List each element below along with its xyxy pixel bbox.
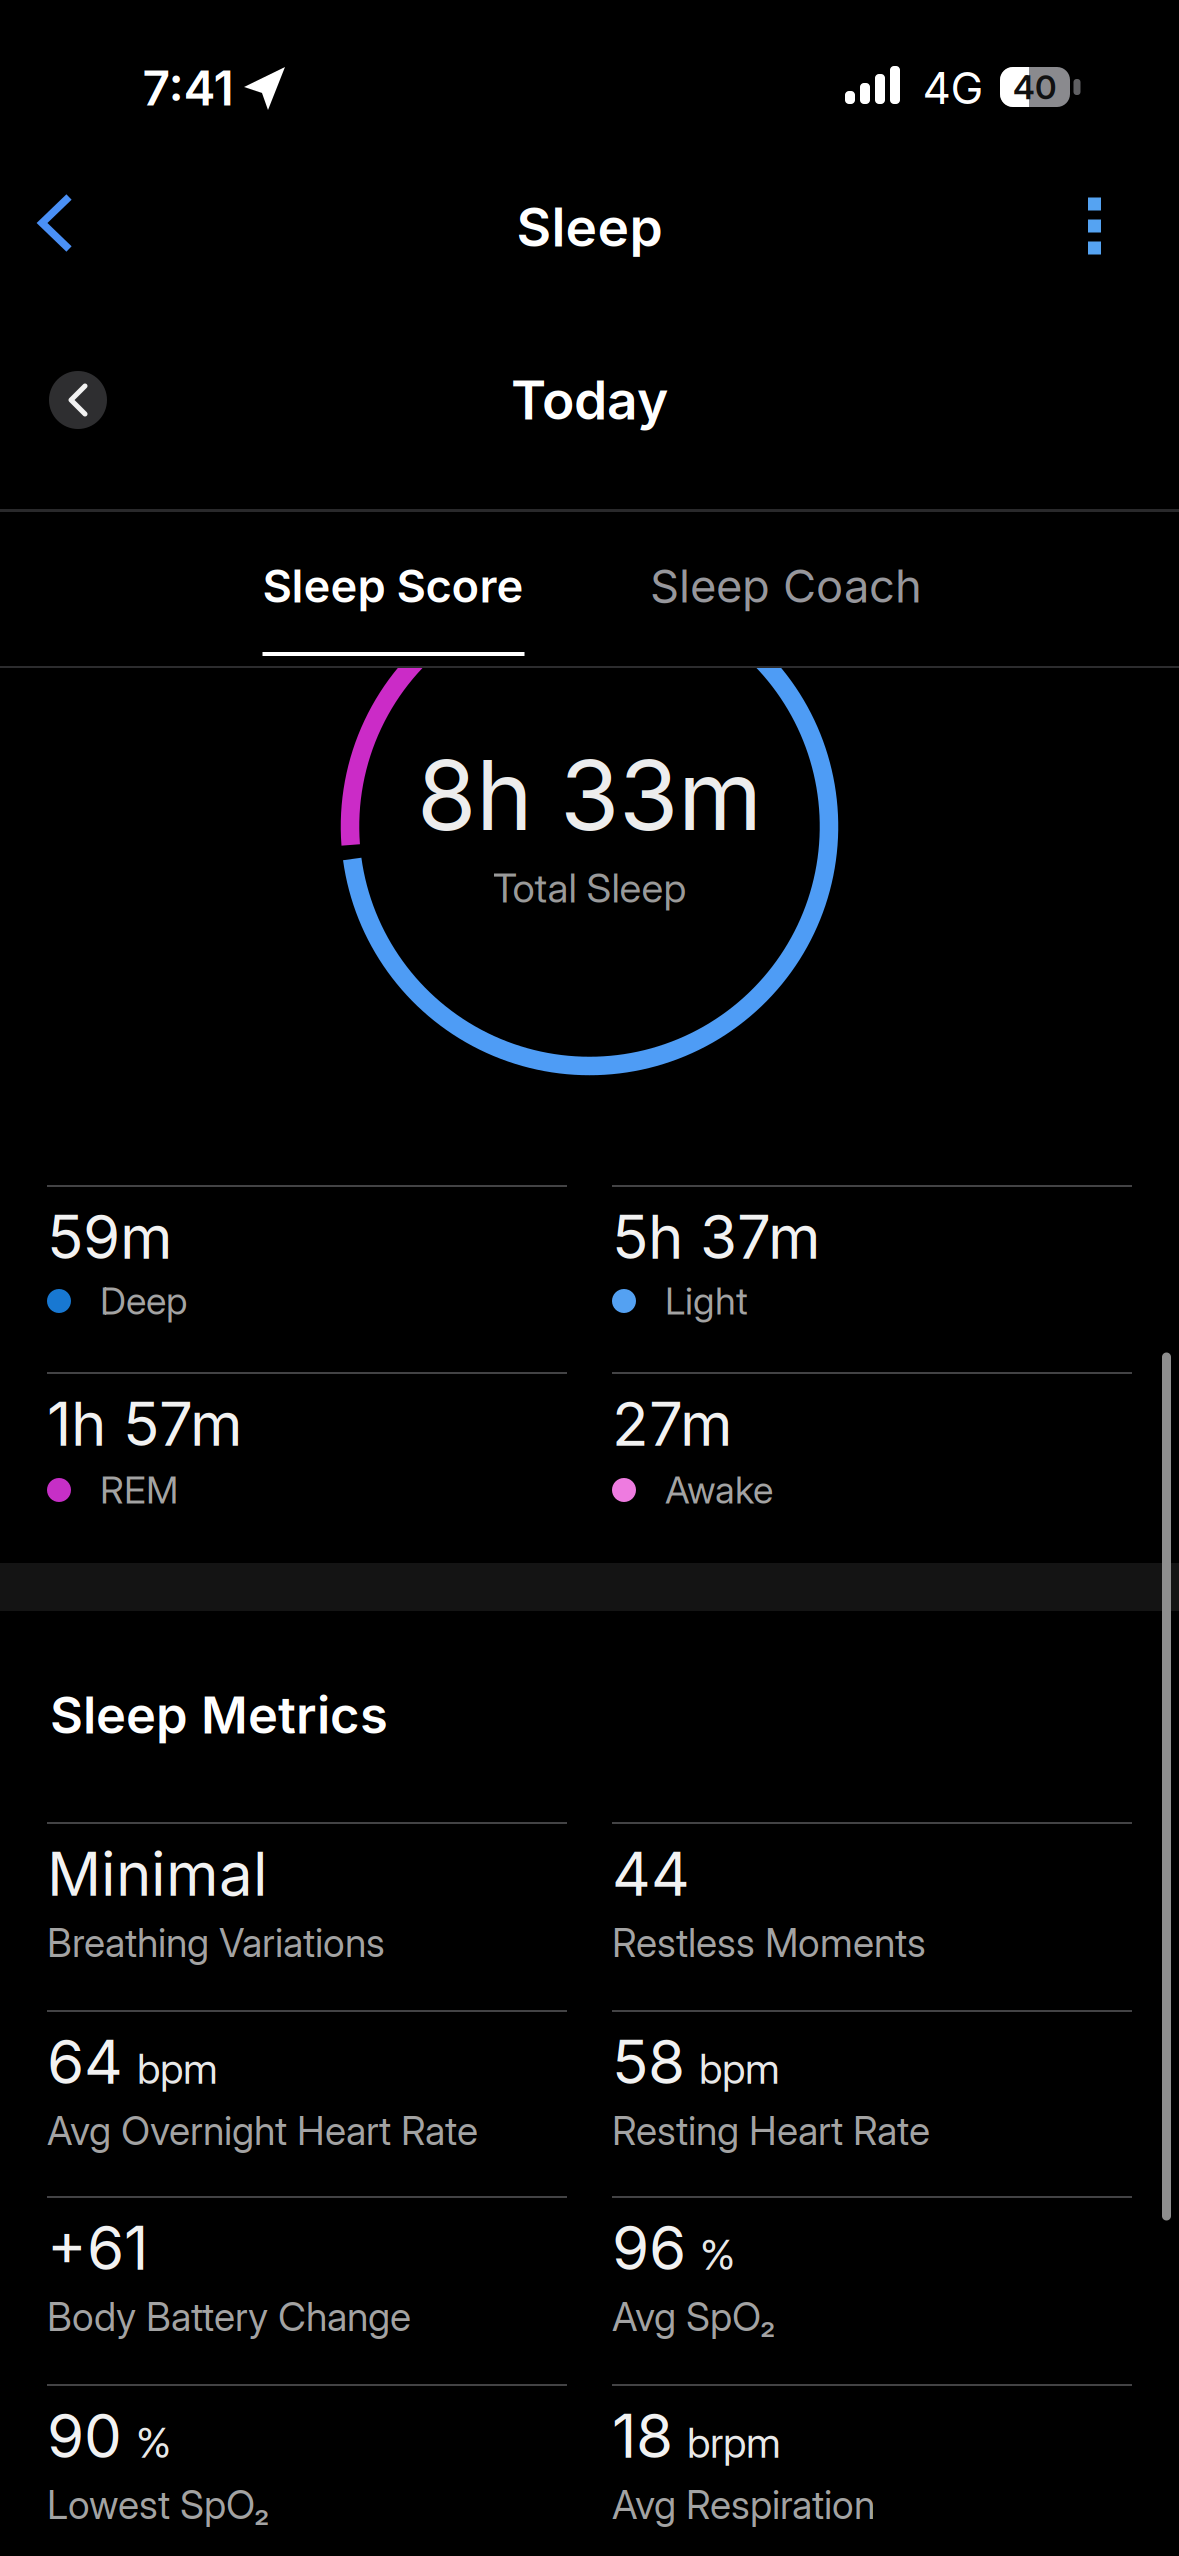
staticText: Avg Overnight Heart Rate bbox=[47, 2108, 478, 2154]
staticText: 64 bbox=[47, 2027, 123, 2097]
staticText: 8h 33m bbox=[417, 738, 762, 852]
staticText: % bbox=[136, 2418, 171, 2467]
staticText: Sleep Metrics bbox=[50, 1685, 388, 1745]
staticText: 5h 37m bbox=[612, 1202, 821, 1272]
staticText: +61 bbox=[47, 2213, 148, 2283]
staticText: 40 bbox=[1013, 67, 1057, 107]
button[interactable]: Sleep Score bbox=[203, 536, 583, 636]
staticText: 59m bbox=[47, 1202, 173, 1272]
staticText: Total Sleep bbox=[492, 864, 686, 912]
staticText: Body Battery Change bbox=[47, 2294, 411, 2340]
staticText: 58 bbox=[612, 2027, 685, 2097]
staticText: Today bbox=[511, 368, 668, 431]
staticText: 1h 57m bbox=[47, 1389, 243, 1459]
staticText: Sleep bbox=[516, 195, 662, 258]
staticText: 7:41 bbox=[142, 60, 233, 116]
button[interactable] bbox=[49, 371, 107, 429]
staticText: 96 bbox=[612, 2213, 686, 2283]
staticText: Avg Respiration bbox=[612, 2482, 875, 2528]
staticText: 27m bbox=[612, 1389, 733, 1459]
staticText: Avg SpO₂ bbox=[612, 2294, 775, 2340]
staticText: 44 bbox=[612, 1839, 690, 1909]
staticText: Minimal bbox=[47, 1839, 268, 1909]
staticText: Breathing Variations bbox=[47, 1920, 385, 1966]
staticText: 4G bbox=[922, 62, 983, 114]
staticText: % bbox=[700, 2230, 735, 2279]
button[interactable] bbox=[0, 0, 1179, 2556]
staticText: Sleep Coach bbox=[650, 559, 922, 613]
staticText: Sleep Score bbox=[262, 559, 523, 613]
staticText: Restless Moments bbox=[612, 1920, 926, 1966]
staticText: bpm bbox=[699, 2044, 780, 2093]
staticText: 18 bbox=[612, 2401, 673, 2471]
staticText: Deep bbox=[100, 1279, 187, 1323]
button[interactable] bbox=[0, 0, 1179, 2556]
staticText: REM bbox=[100, 1468, 178, 1512]
staticText: bpm bbox=[137, 2044, 218, 2093]
staticText: brpm bbox=[687, 2418, 781, 2467]
staticText: 90 bbox=[47, 2401, 122, 2471]
staticText: Awake bbox=[665, 1468, 773, 1512]
staticText: Resting Heart Rate bbox=[612, 2108, 930, 2154]
staticText: Light bbox=[665, 1279, 748, 1323]
button[interactable]: Sleep Coach bbox=[596, 536, 976, 636]
staticText: Lowest SpO₂ bbox=[47, 2482, 269, 2528]
